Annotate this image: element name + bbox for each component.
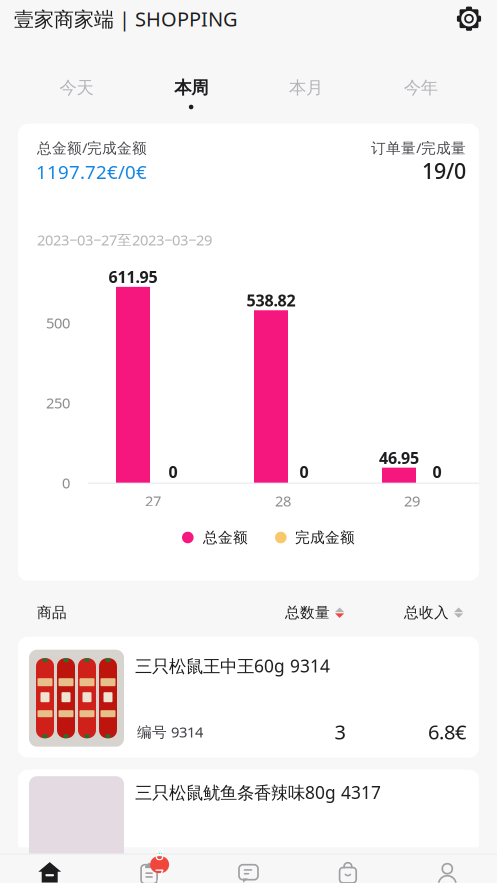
staticText: 611.95 [108, 266, 157, 287]
staticText: 总金额/完成金额 [37, 138, 147, 157]
staticText: 总收入 [404, 604, 449, 622]
button[interactable]: 今天 [19, 37, 134, 121]
staticText: 订单量/完成量 [371, 138, 466, 157]
staticText: 本月 [289, 77, 323, 98]
staticText: 总数量 [285, 604, 330, 622]
staticText: 2023−03−27至2023−03−29 [37, 230, 212, 249]
button[interactable]: 商品 [298, 854, 398, 883]
staticText: 三只松鼠王中王60g 9314 [135, 654, 330, 677]
button[interactable]: 商店 [0, 854, 99, 883]
staticText: 今天 [59, 77, 93, 98]
staticText: 46.95 [379, 447, 419, 468]
staticText: 3 [334, 718, 345, 745]
button[interactable]: 本月 [248, 37, 363, 121]
staticText: 500 [46, 313, 70, 332]
staticText: 完成金额 [295, 529, 355, 547]
staticText: 538.82 [246, 290, 295, 311]
staticText: 250 [46, 393, 70, 412]
button[interactable]: 本周 [134, 37, 249, 121]
staticText: 6.8€ [428, 718, 466, 745]
staticText: 今年 [404, 77, 438, 98]
button[interactable]: 三只松鼠王中王60g 9314 [18, 637, 479, 758]
staticText: 本周 [174, 77, 208, 98]
staticText: 19/0 [422, 156, 466, 185]
button[interactable]: 总收入 [404, 600, 497, 626]
staticText: 总金额 [203, 529, 248, 547]
button[interactable]: 总数量 [285, 600, 385, 626]
staticText: 0 [432, 461, 441, 482]
button[interactable]: 今年 [363, 37, 478, 121]
button[interactable]: Settings [453, 3, 485, 35]
staticText: 0 [62, 473, 70, 492]
button[interactable]: 三只松鼠鱿鱼条香辣味80g 4317 [18, 770, 479, 854]
staticText: 0 [168, 461, 177, 482]
staticText: 壹家商家端 | SHOPPING [14, 5, 238, 32]
button[interactable]: 消息 [199, 854, 298, 883]
staticText: 商品 [37, 604, 67, 622]
staticText: 27 [145, 491, 161, 510]
staticText: 29 [404, 491, 420, 510]
button[interactable]: 87 [99, 854, 199, 883]
staticText: 0 [299, 461, 308, 482]
staticText: 编号 9314 [137, 722, 203, 741]
staticText: 28 [275, 491, 291, 510]
button[interactable]: 用户 [398, 854, 497, 883]
staticText: 三只松鼠鱿鱼条香辣味80g 4317 [135, 781, 381, 804]
staticText: 1197.72€/0€ [36, 159, 147, 184]
staticText: 87 [155, 843, 164, 883]
